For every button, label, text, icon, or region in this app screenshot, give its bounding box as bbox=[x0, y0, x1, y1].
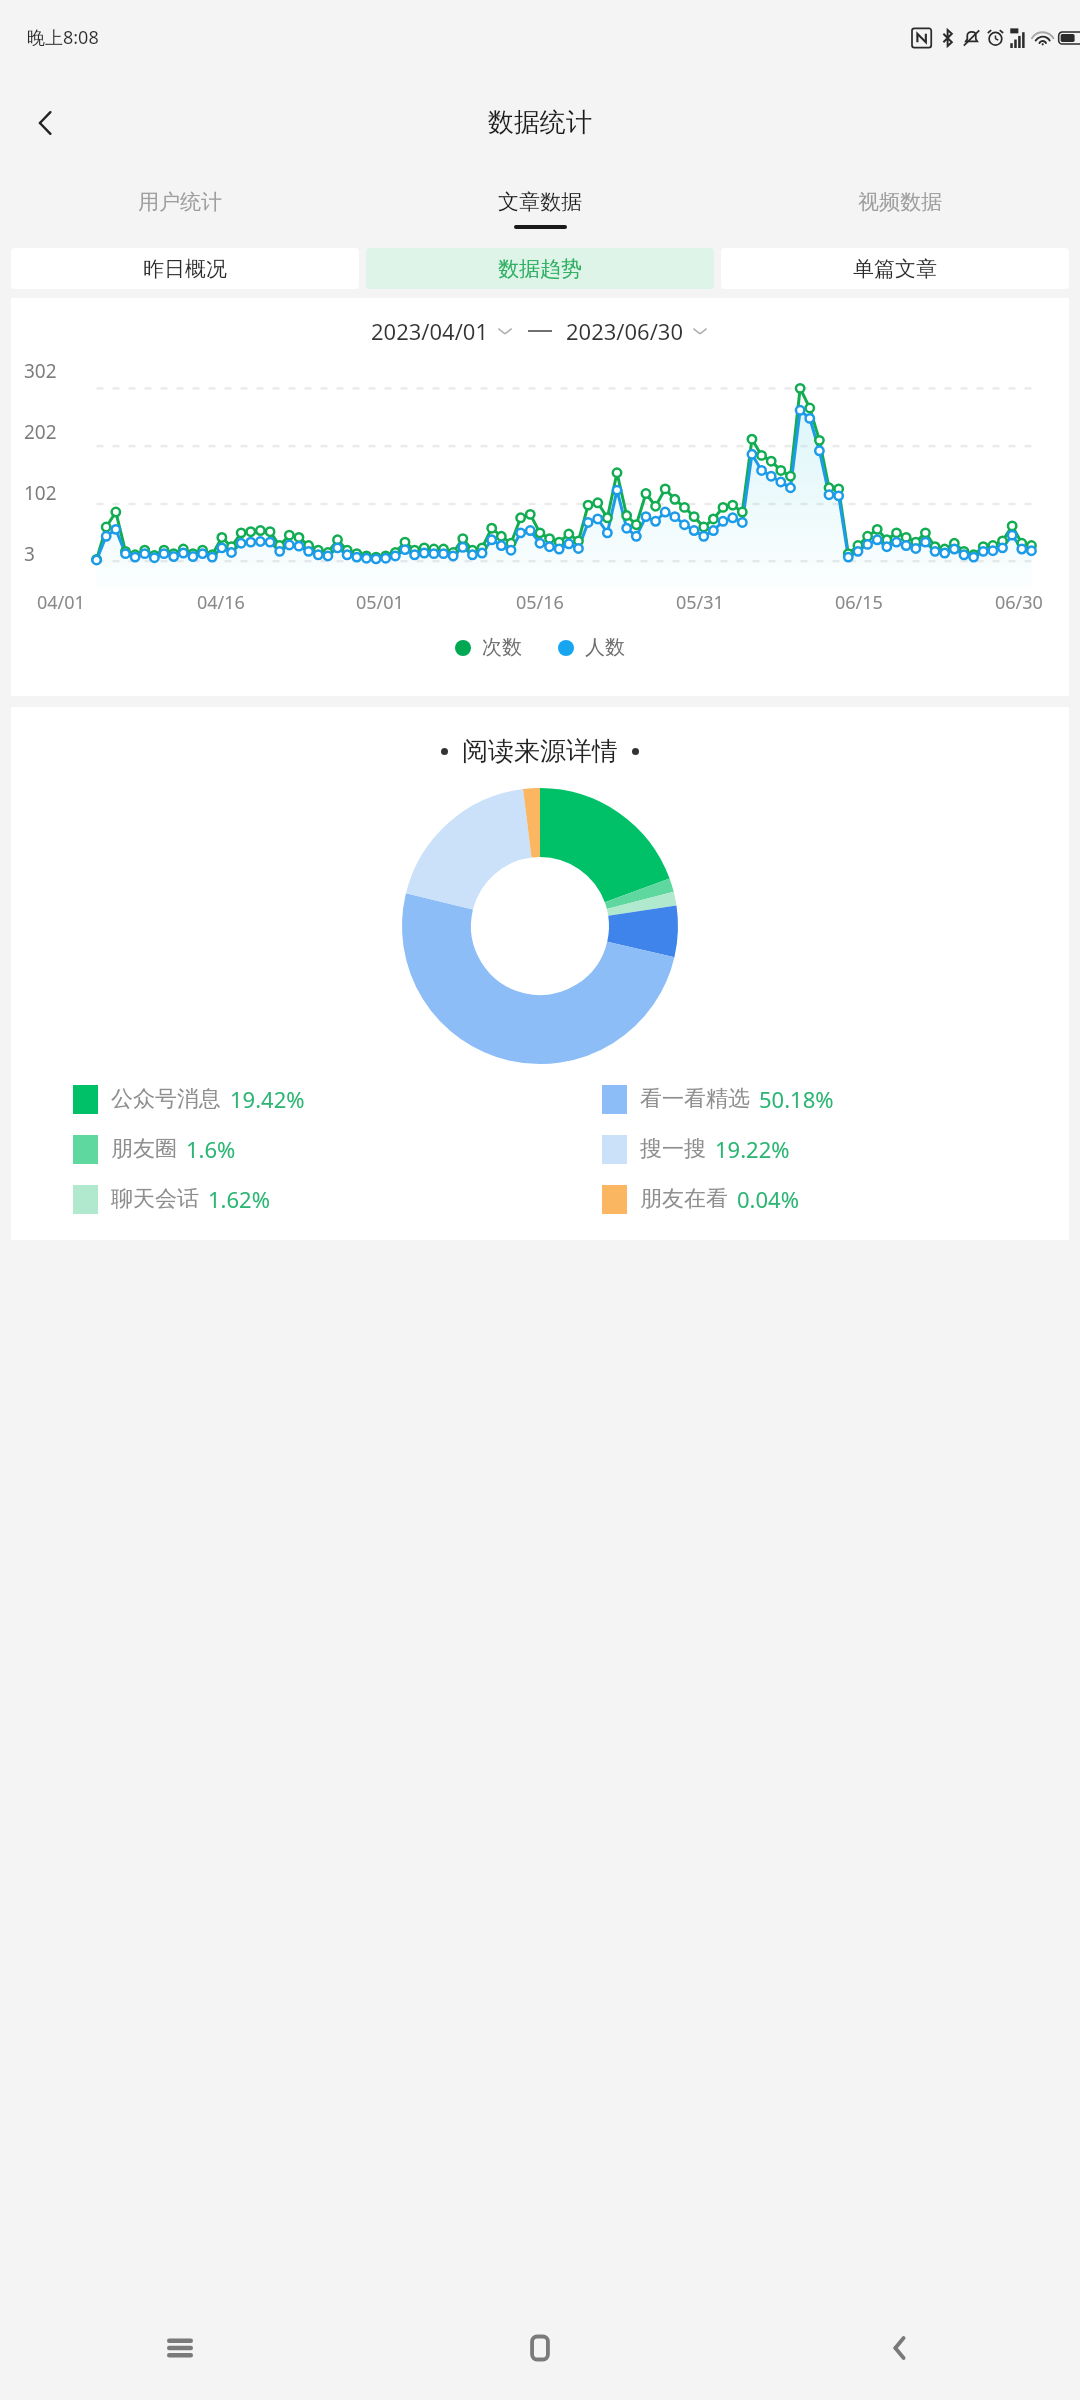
staticText: 昨日概况 bbox=[143, 256, 227, 282]
staticText: 202 bbox=[24, 419, 57, 445]
staticText: 数据统计 bbox=[488, 106, 592, 139]
staticText: 公众号消息 bbox=[111, 1085, 221, 1113]
button[interactable]: 2023/06/30 bbox=[562, 312, 713, 350]
staticText: 04/01 bbox=[37, 590, 85, 615]
staticText: 朋友圈 bbox=[111, 1135, 177, 1163]
button[interactable]: 单篇文章 bbox=[721, 248, 1069, 289]
button[interactable]: 昨日概况 bbox=[11, 248, 359, 289]
button[interactable]: 2023/04/01 bbox=[367, 312, 518, 350]
button[interactable]: 数据趋势 bbox=[366, 248, 714, 289]
button[interactable]: Back bbox=[16, 94, 74, 152]
staticText: 1.62% bbox=[208, 1184, 270, 1214]
button[interactable]: Recents bbox=[0, 2295, 360, 2400]
staticText: 06/30 bbox=[995, 590, 1043, 615]
button[interactable]: 视频数据 bbox=[720, 170, 1080, 248]
staticText: 次数 bbox=[482, 635, 522, 660]
staticText: 阅读来源详情 bbox=[462, 735, 618, 768]
staticText: 102 bbox=[24, 480, 57, 506]
staticText: 朋友在看 bbox=[640, 1185, 728, 1213]
staticText: 06/15 bbox=[835, 590, 883, 615]
staticText: 晚上8:08 bbox=[27, 25, 99, 50]
staticText: 05/16 bbox=[516, 590, 564, 615]
staticText: 19.22% bbox=[715, 1134, 790, 1164]
staticText: 1.6% bbox=[186, 1134, 236, 1164]
staticText: 50.18% bbox=[759, 1084, 834, 1114]
staticText: 04/16 bbox=[197, 590, 245, 615]
staticText: 302 bbox=[24, 358, 57, 384]
button[interactable]: Home bbox=[360, 2295, 720, 2400]
staticText: 用户统计 bbox=[138, 189, 222, 215]
staticText: 2023/06/30 bbox=[566, 316, 684, 346]
staticText: 05/01 bbox=[356, 590, 404, 615]
button[interactable]: Back bbox=[720, 2295, 1080, 2400]
staticText: 视频数据 bbox=[858, 189, 942, 215]
staticText: 单篇文章 bbox=[853, 256, 937, 282]
staticText: 搜一搜 bbox=[640, 1135, 706, 1163]
button[interactable]: 用户统计 bbox=[0, 170, 360, 248]
staticText: 看一看精选 bbox=[640, 1085, 750, 1113]
staticText: 文章数据 bbox=[498, 189, 582, 215]
staticText: 05/31 bbox=[676, 590, 724, 615]
staticText: 人数 bbox=[585, 635, 625, 660]
staticText: 3 bbox=[24, 541, 35, 567]
staticText: 19.42% bbox=[230, 1084, 305, 1114]
staticText: 2023/04/01 bbox=[371, 316, 489, 346]
staticText: 0.04% bbox=[737, 1184, 799, 1214]
staticText: 数据趋势 bbox=[498, 256, 582, 282]
staticText: 聊天会话 bbox=[111, 1185, 199, 1213]
button[interactable]: 文章数据 bbox=[360, 170, 720, 248]
